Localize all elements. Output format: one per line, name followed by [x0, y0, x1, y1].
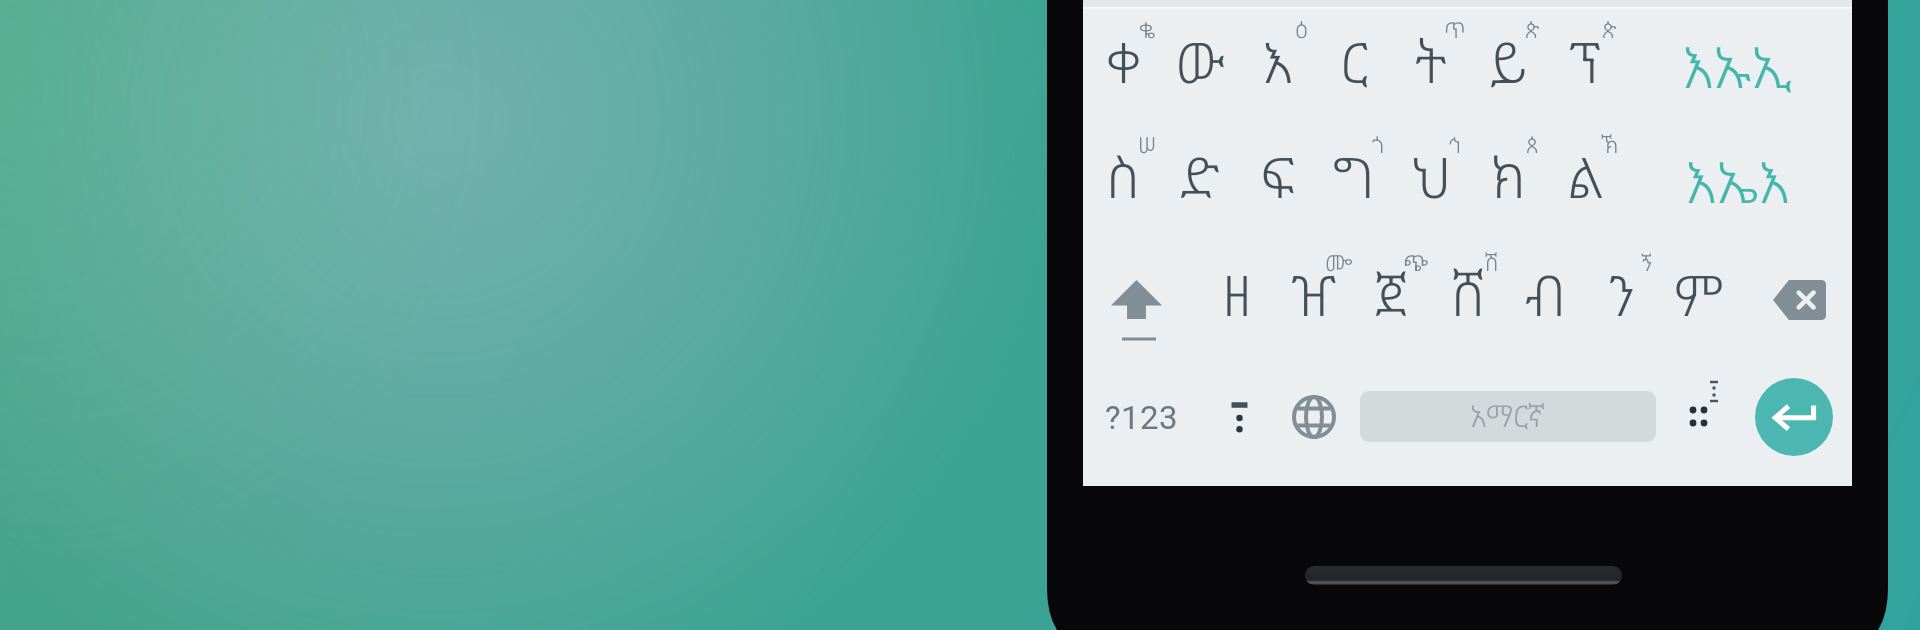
button[interactable]: Symbols [1098, 386, 1186, 448]
button[interactable]: Change keyboard language [1283, 386, 1345, 448]
button[interactable]: Space [1360, 391, 1656, 442]
button[interactable]: Punctuation [1208, 386, 1270, 448]
button[interactable]: Backspace [1764, 268, 1836, 332]
button[interactable]: Shift [1100, 262, 1176, 348]
button[interactable]: Full stop [1676, 378, 1732, 444]
button[interactable]: Enter [1755, 378, 1833, 456]
